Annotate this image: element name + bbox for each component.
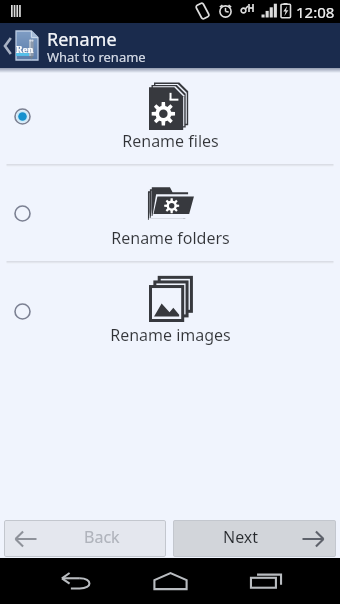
staticText: Rename xyxy=(47,27,117,52)
staticText: Rename images xyxy=(110,324,231,346)
button[interactable]: Recent apps xyxy=(234,558,298,604)
button[interactable]: Home xyxy=(138,558,202,604)
button[interactable]: Rename images xyxy=(0,263,340,359)
staticText: Rename folders xyxy=(111,227,230,249)
button[interactable]: Navigate up xyxy=(0,23,15,68)
button[interactable]: Rename files xyxy=(0,69,340,164)
button[interactable]: Rename folders xyxy=(0,166,340,261)
button[interactable]: Back xyxy=(44,558,108,604)
button[interactable]: Next xyxy=(173,520,336,557)
staticText: Rename files xyxy=(122,130,219,152)
staticText: 12:08 xyxy=(296,2,335,22)
button[interactable]: Back xyxy=(4,520,166,557)
staticText: Back xyxy=(84,526,120,548)
staticText: Next xyxy=(223,526,259,548)
staticText: Ren xyxy=(16,43,34,55)
staticText: What to rename xyxy=(47,48,146,66)
